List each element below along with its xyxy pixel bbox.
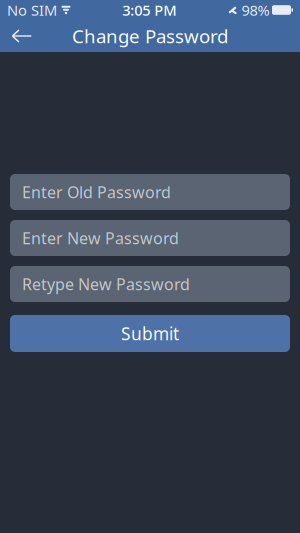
staticText: 3:05 PM	[122, 0, 176, 20]
button[interactable]: Back	[0, 20, 44, 52]
staticText: Retype New Password	[22, 273, 190, 295]
staticText: Change Password	[72, 24, 228, 48]
staticText: Submit	[121, 322, 179, 345]
button[interactable]: Submit	[10, 315, 290, 352]
staticText: Enter Old Password	[22, 181, 171, 203]
staticText: Enter New Password	[22, 227, 179, 249]
staticText: No SIM	[7, 0, 57, 20]
staticText: 98%	[241, 0, 269, 20]
